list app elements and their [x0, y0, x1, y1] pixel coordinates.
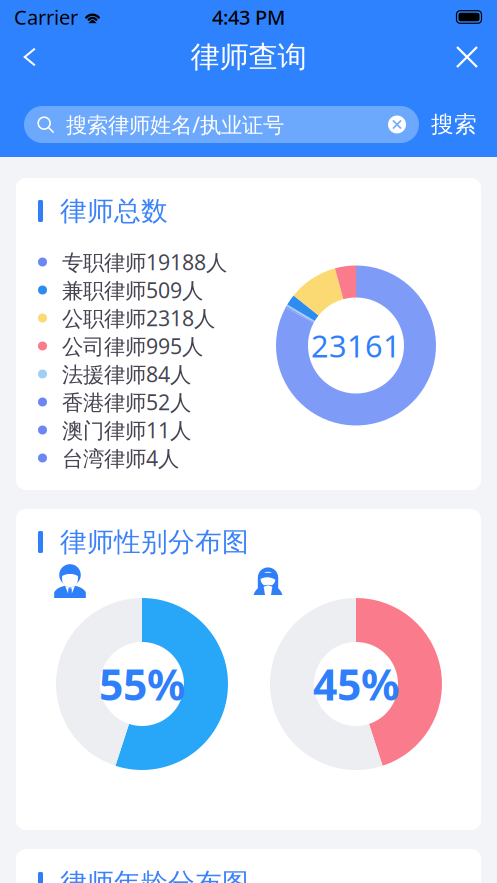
staticText: 专职律师19188人	[62, 248, 227, 276]
staticText: 澳门律师11人	[62, 416, 191, 444]
staticText: 律师查询	[190, 39, 306, 75]
staticText: 4:43 PM	[212, 4, 285, 30]
staticText: 搜索律师姓名/执业证号	[66, 110, 284, 139]
staticText: 兼职律师509人	[62, 276, 203, 304]
staticText: 律师总数	[60, 195, 168, 227]
staticText: 律师年龄分布图	[60, 867, 249, 883]
staticText: 法援律师84人	[62, 360, 191, 388]
button[interactable]: Close	[445, 35, 489, 79]
staticText: 公职律师2318人	[62, 304, 215, 332]
staticText: 香港律师52人	[62, 388, 191, 416]
staticText: 45%	[313, 656, 399, 712]
staticText: 搜索	[431, 111, 477, 138]
staticText: Carrier	[14, 4, 78, 30]
staticText: 55%	[99, 656, 185, 712]
button[interactable]: Clear text	[388, 115, 406, 133]
button[interactable]: Back	[8, 35, 52, 79]
staticText: 台湾律师4人	[62, 444, 179, 472]
staticText: 23161	[311, 325, 401, 366]
staticText: 律师性别分布图	[60, 526, 249, 558]
staticText: 公司律师995人	[62, 332, 203, 360]
button[interactable]: 搜索	[419, 106, 489, 143]
